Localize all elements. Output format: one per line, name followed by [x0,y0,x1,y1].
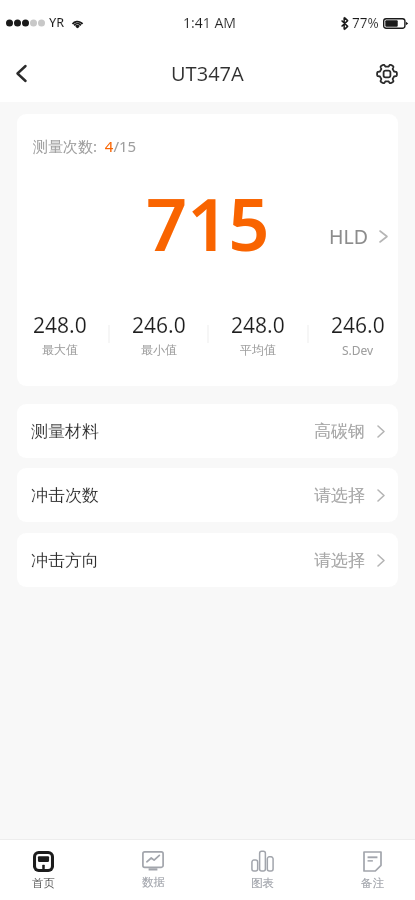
button[interactable]: 首页 [23,840,63,900]
staticText: 冲击方向 [31,550,99,571]
staticText: UT347A [171,60,244,87]
staticText: YR [49,14,65,31]
staticText: 246.0 [331,311,385,340]
button[interactable]: HLD [329,223,388,250]
staticText: 首页 [32,876,55,890]
staticText: 715 [146,174,270,272]
staticText: 图表 [251,876,274,890]
button[interactable]: 图表 [242,840,282,900]
staticText: S.Dev [342,342,374,357]
staticText: 最小值 [141,342,177,357]
staticText: 平均值 [240,342,276,357]
staticText: 1:41 AM [183,13,237,32]
staticText: 测量次数: 4/15 [33,136,137,156]
staticText: 248.0 [231,311,285,340]
button[interactable]: 冲击次数 [17,468,398,522]
button[interactable]: Back [0,45,42,102]
staticText: 最大值 [42,342,78,357]
staticText: 冲击次数 [31,485,99,506]
staticText: 请选择 [314,550,365,571]
staticText: 高碳钢 [314,421,365,442]
staticText: 246.0 [132,311,186,340]
staticText: 248.0 [33,311,87,340]
button[interactable]: Settings [359,45,415,102]
button[interactable]: 备注 [352,840,392,900]
staticText: 请选择 [314,485,365,506]
staticText: 数据 [142,875,165,889]
staticText: HLD [329,223,368,250]
staticText: 备注 [361,876,384,890]
staticText: 测量材料 [31,421,99,442]
staticText: 77% [352,14,379,32]
button[interactable]: 冲击方向 [17,533,398,587]
button[interactable]: 测量材料 [17,404,398,458]
button[interactable]: 数据 [133,840,173,900]
